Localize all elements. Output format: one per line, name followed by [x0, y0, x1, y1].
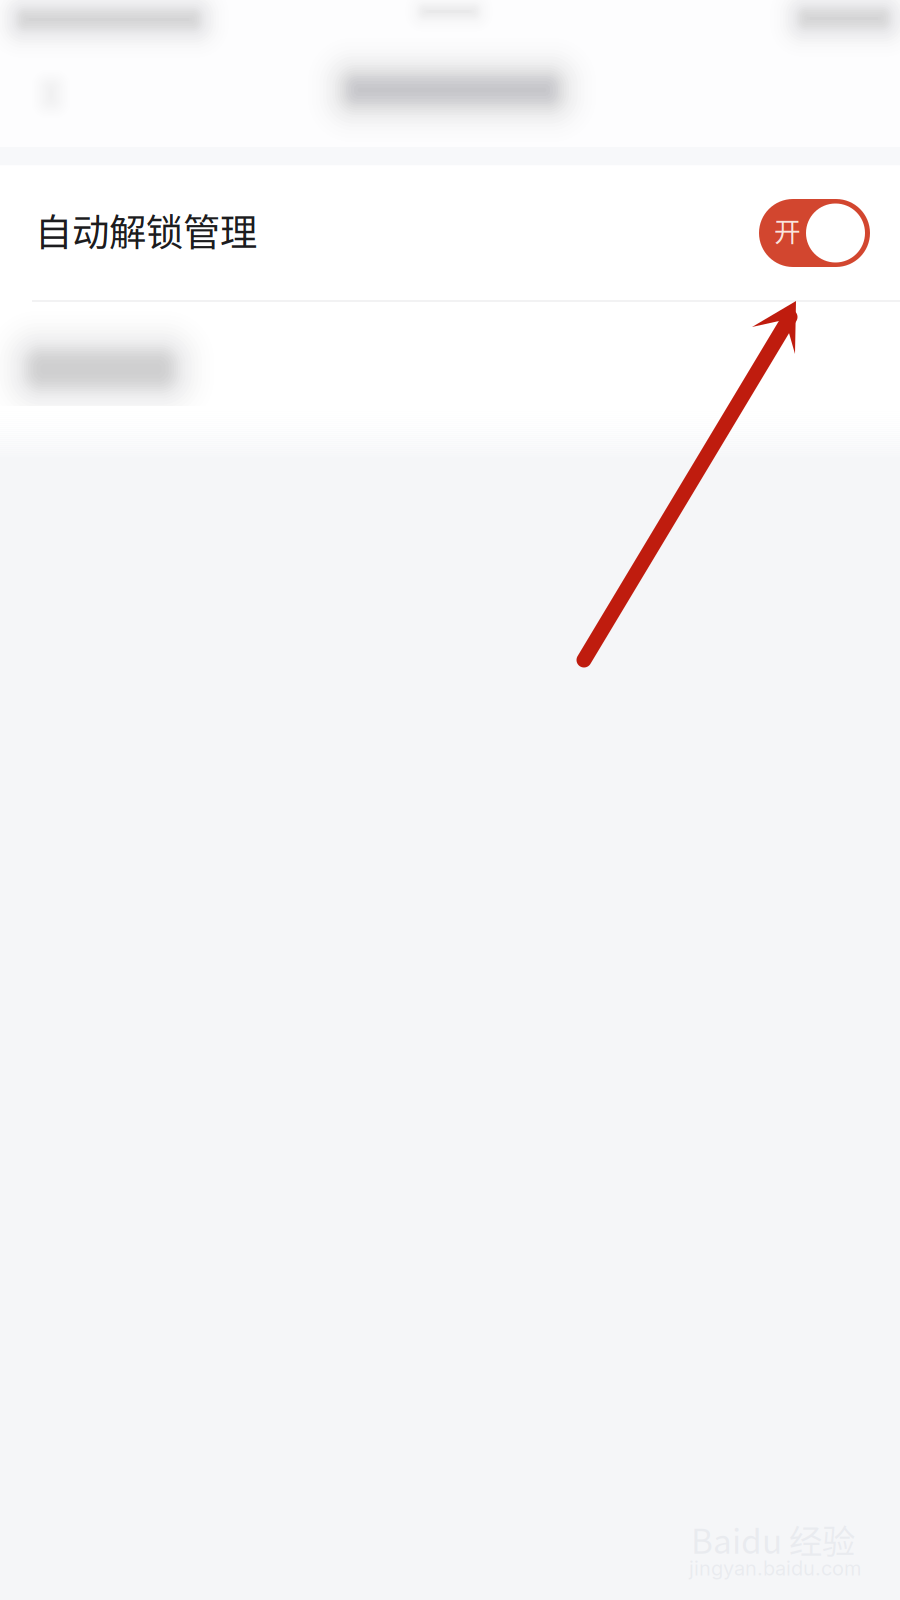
staticText: jingyan.baidu.com: [689, 1556, 861, 1580]
staticText: 自动解锁管理: [35, 203, 257, 257]
staticText: Baidu 经验: [691, 1515, 855, 1563]
button[interactable]: 自动解锁管理 开关: [759, 199, 870, 267]
staticText: 开: [774, 211, 801, 249]
button[interactable]: 自动解锁管理: [0, 166, 900, 300]
